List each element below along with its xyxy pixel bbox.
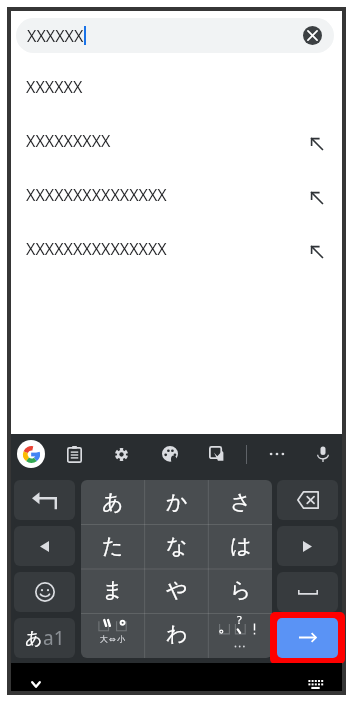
staticText: か [166, 489, 188, 515]
button[interactable]: More options [260, 437, 294, 471]
button[interactable]: XXXXXX [16, 18, 334, 53]
button[interactable]: Hide keyboard [24, 672, 48, 696]
staticText: な [166, 533, 188, 559]
button[interactable]: Clear [303, 26, 322, 45]
staticText: XXXXXXXXX [26, 130, 111, 152]
button[interactable]: わ [145, 612, 209, 656]
button[interactable]: Stickers [200, 437, 234, 471]
staticText: XXXXXX [26, 76, 83, 98]
staticText: XXXXXX [27, 25, 84, 47]
button[interactable]: Space [277, 572, 338, 612]
button[interactable]: か [145, 480, 209, 524]
button[interactable]: な [145, 524, 209, 568]
button[interactable]: Delete [277, 480, 338, 520]
button[interactable]: XXXXXX [11, 60, 342, 114]
button[interactable]: 大⇔小 [81, 612, 145, 656]
button[interactable]: Switch keyboard [303, 672, 327, 696]
button[interactable]: Switch input mode [14, 618, 75, 658]
button[interactable]: XXXXXXXXXXXXXXX [11, 222, 342, 276]
button[interactable]: Enter [277, 618, 338, 658]
button[interactable]: は [209, 524, 272, 568]
staticText: あ [102, 489, 124, 515]
staticText: た [102, 533, 124, 559]
staticText: わ [166, 621, 188, 647]
button[interactable]: Cursor right [277, 526, 338, 566]
staticText: 大⇔小 [100, 634, 127, 644]
button[interactable]: Themes [153, 437, 187, 471]
staticText: は [230, 533, 252, 559]
button[interactable]: Voice input [306, 437, 340, 471]
button[interactable]: ? [209, 612, 272, 656]
button[interactable]: ら [209, 568, 272, 612]
button[interactable]: Emoji [14, 572, 75, 612]
staticText: ? [237, 612, 242, 627]
button[interactable]: XXXXXXXXX [11, 114, 342, 168]
staticText: ま [102, 577, 124, 603]
button[interactable]: た [81, 524, 145, 568]
staticText: あ [25, 628, 43, 649]
staticText: XXXXXXXXXXXXXXX [26, 238, 167, 260]
button[interactable]: Undo [14, 480, 75, 520]
button[interactable]: Settings [104, 437, 138, 471]
staticText: XXXXXXXXXXXXXXX [26, 184, 167, 206]
button[interactable]: や [145, 568, 209, 612]
button[interactable]: Cursor left [14, 526, 75, 566]
button[interactable]: XXXXXXXXXXXXXXX [11, 168, 342, 222]
staticText: さ [230, 489, 252, 515]
button[interactable]: Clipboard [57, 437, 91, 471]
staticText: や [166, 577, 188, 603]
staticText: a1 [43, 625, 65, 651]
staticText: ら [230, 577, 252, 603]
button[interactable]: さ [209, 480, 272, 524]
button[interactable]: あ [81, 480, 145, 524]
button[interactable]: ま [81, 568, 145, 612]
button[interactable]: Google search [17, 440, 45, 468]
